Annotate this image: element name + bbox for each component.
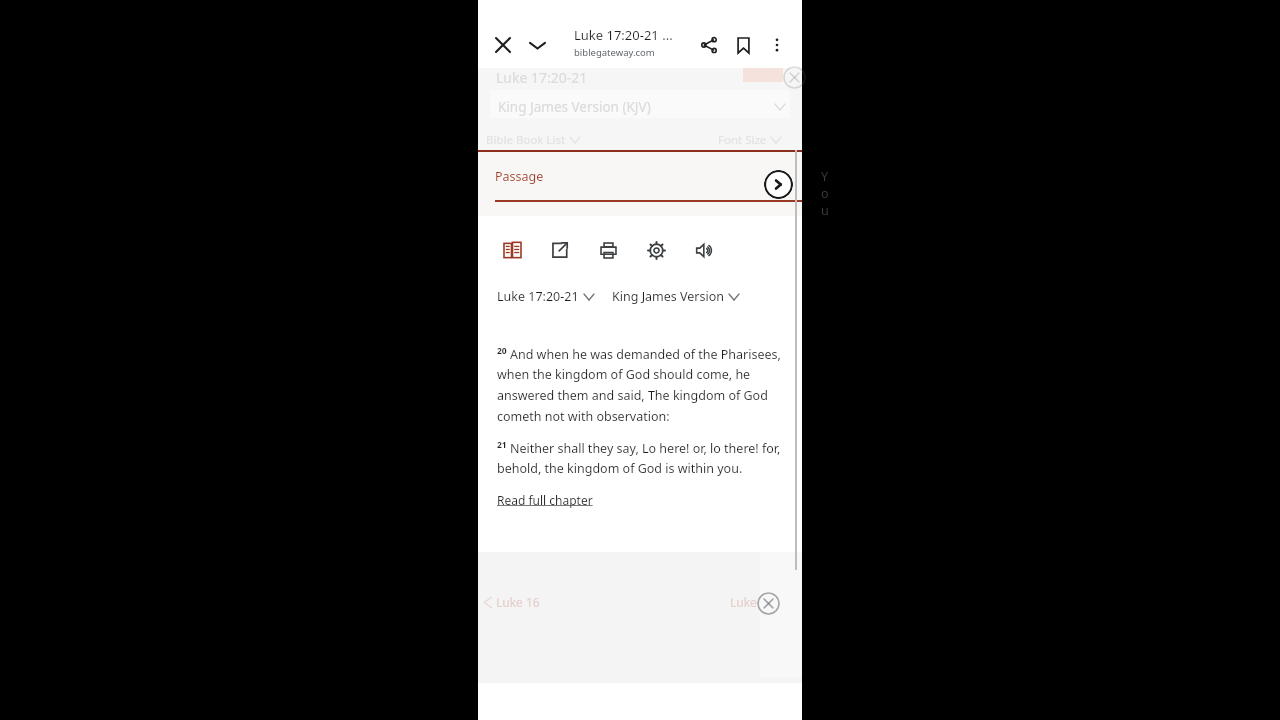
button[interactable]: Print [584,226,632,274]
staticText: Luke 17:20-21 [496,68,588,87]
button[interactable]: Settings [632,226,680,274]
staticText: Luke 18 [730,594,774,610]
staticText: 21 Neither shall they say, Lo here! or, … [497,439,782,477]
button[interactable]: Next tabs [764,170,793,199]
button[interactable]: Listen [680,226,728,274]
button[interactable]: Close ad [757,592,780,615]
staticText: Bible Book List [486,132,566,148]
button[interactable]: Read full chapter [497,492,593,508]
staticText: biblegateway.com [574,46,655,59]
button[interactable]: Luke 18 [730,594,786,610]
button[interactable]: Close [488,30,518,60]
button[interactable]: King James Version [612,288,739,305]
button[interactable]: Bible view [488,226,536,274]
staticText: King James Version [612,288,724,305]
staticText: 20 And when he was demanded of the Phari… [497,345,782,425]
staticText: Font Size [718,132,767,148]
button[interactable]: Bookmark [728,30,758,60]
button[interactable]: Open in new [536,226,584,274]
button[interactable]: More options [762,30,792,60]
button[interactable]: Passage [495,168,802,202]
button[interactable]: Luke 16 [484,594,540,610]
staticText: Passage [495,168,544,185]
staticText: Read full chapter [497,492,593,508]
button[interactable]: Expand [522,30,552,60]
staticText: Luke 17:20-21 ... [574,26,673,44]
staticText: Luke 17:20-21 [497,288,579,305]
button[interactable]: Luke 17:20-21 [497,288,594,305]
button[interactable] [490,90,790,118]
button[interactable]: Close ad [783,66,806,89]
staticText: Luke 16 [496,594,540,610]
staticText: King James Version (KJV) [498,98,651,116]
button[interactable]: Share [694,30,724,60]
